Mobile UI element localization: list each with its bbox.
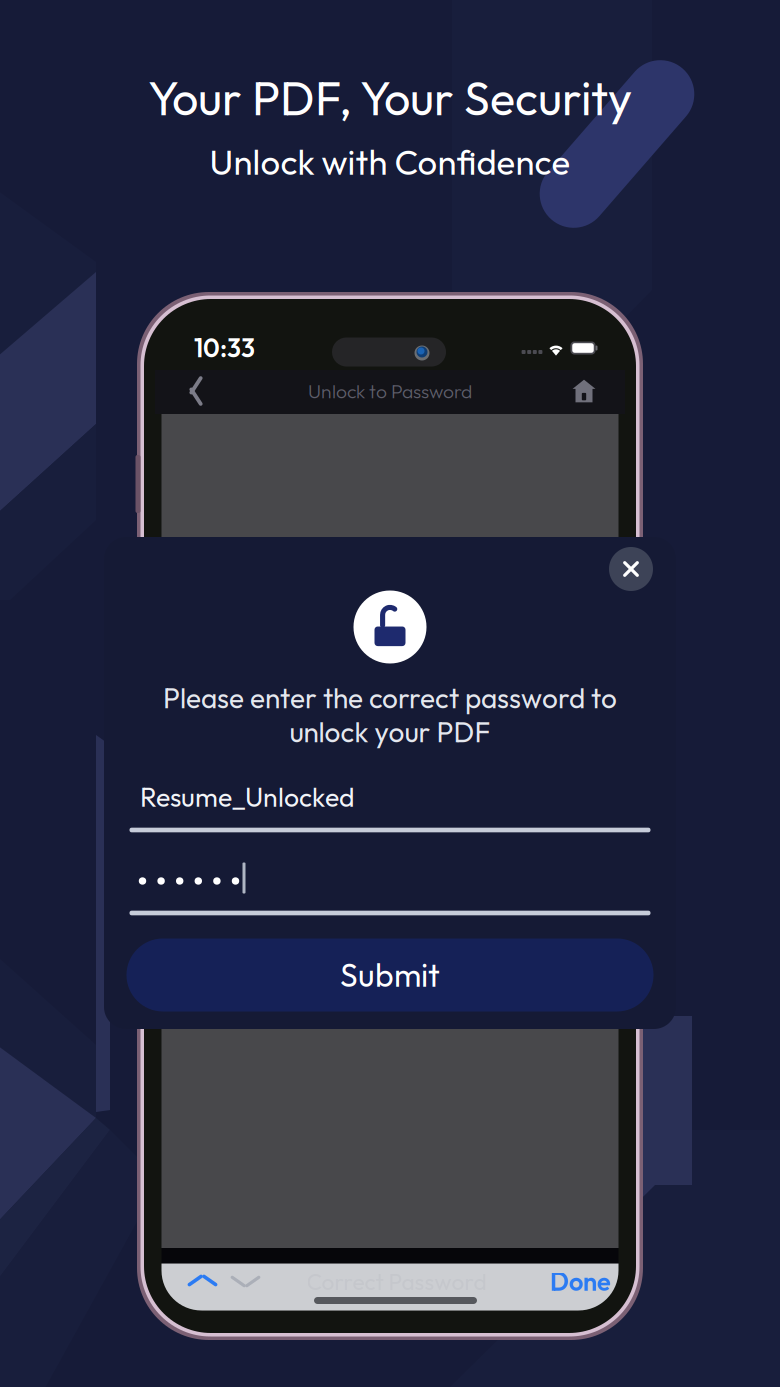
staticText: Please enter the correct password to <box>163 680 617 716</box>
staticText: Submit <box>340 955 440 995</box>
staticText: Done <box>550 1265 611 1297</box>
button[interactable]: Close <box>609 547 653 591</box>
staticText: Unlock with Confidence <box>209 140 570 184</box>
staticText: Resume_Unlocked <box>140 780 355 814</box>
staticText: 10:33 <box>194 332 255 364</box>
button[interactable]: Submit <box>126 938 653 1011</box>
staticText: Your PDF, Your Security <box>148 69 632 127</box>
staticText: unlock your PDF <box>289 714 490 750</box>
staticText: Unlock to Password <box>308 379 472 403</box>
